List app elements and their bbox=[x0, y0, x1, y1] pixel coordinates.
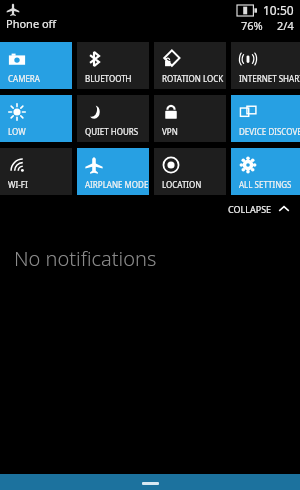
staticText: WI-FI bbox=[8, 179, 28, 190]
staticText: QUIET HOURS bbox=[85, 126, 139, 137]
button[interactable]: COLLAPSE bbox=[0, 195, 300, 223]
staticText: COLLAPSE bbox=[228, 203, 272, 215]
button[interactable]: LOCATION bbox=[154, 148, 226, 195]
staticText: ALL SETTINGS bbox=[239, 179, 292, 190]
button[interactable]: WI-FI bbox=[0, 148, 72, 195]
button[interactable]: BLUETOOTH bbox=[77, 42, 149, 89]
staticText: 76% bbox=[241, 18, 263, 33]
button[interactable]: VPN bbox=[154, 95, 226, 142]
button[interactable]: LOW bbox=[0, 95, 72, 142]
staticText: VPN bbox=[162, 126, 178, 137]
staticText: LOCATION bbox=[162, 179, 202, 190]
button[interactable]: INTERNET SHARING bbox=[231, 42, 300, 89]
staticText: INTERNET SHARING bbox=[239, 73, 300, 84]
button[interactable]: ALL SETTINGS bbox=[231, 148, 300, 195]
staticText: 10:50 bbox=[263, 2, 294, 18]
staticText: BLUETOOTH bbox=[85, 73, 132, 84]
button[interactable]: DEVICE DISCOVERY bbox=[231, 95, 300, 142]
button[interactable]: CAMERA bbox=[0, 42, 72, 89]
staticText: AIRPLANE MODE bbox=[85, 179, 149, 190]
staticText: Phone off bbox=[6, 16, 57, 31]
staticText: 2/4 bbox=[277, 18, 294, 33]
staticText: LOW bbox=[8, 126, 26, 137]
button[interactable]: QUIET HOURS bbox=[77, 95, 149, 142]
button[interactable]: ROTATION LOCK bbox=[154, 42, 226, 89]
staticText: ROTATION LOCK bbox=[162, 73, 224, 84]
staticText: No notifications bbox=[14, 245, 157, 272]
staticText: DEVICE DISCOVERY bbox=[239, 126, 300, 137]
button[interactable]: Navigation bbox=[0, 474, 300, 490]
button[interactable]: AIRPLANE MODE bbox=[77, 148, 149, 195]
staticText: CAMERA bbox=[8, 73, 40, 84]
